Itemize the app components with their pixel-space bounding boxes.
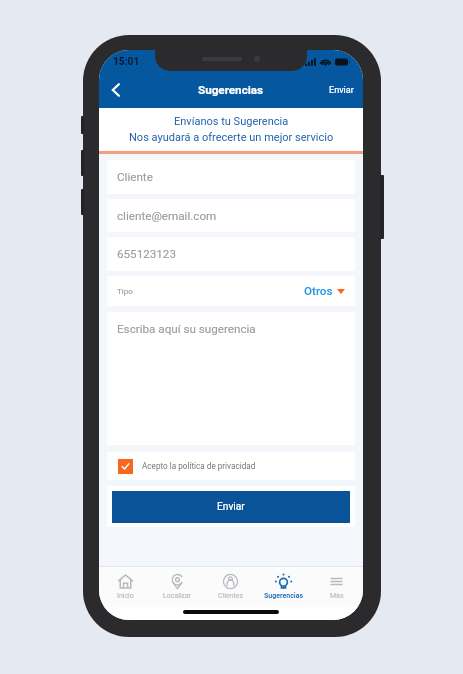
staticText: cliente@email.com [117,209,217,223]
button[interactable]: Más [310,567,363,607]
staticText: 15:01 [113,56,140,68]
staticText: Acepto la política de privacidad [142,461,256,471]
button[interactable]: Localizar [151,567,204,607]
staticText: Enviar [217,501,245,513]
button[interactable]: Escriba aquí su sugerencia [107,312,355,445]
staticText: Sugerencias [264,592,303,600]
button[interactable]: Tipo [107,276,355,306]
button[interactable]: Inicio [99,567,151,607]
button[interactable]: Acepto la política de privacidad [107,452,355,480]
staticText: Localizar [163,592,192,600]
button[interactable]: Enviar [112,491,350,523]
staticText: Envíanos tu Sugerencia [174,115,289,128]
staticText: Más [330,592,344,600]
staticText: Otros [304,284,333,298]
staticText: Tipo [117,287,133,296]
button[interactable]: Clientes [204,567,257,607]
staticText: Escriba aquí su sugerencia [117,322,256,336]
button[interactable]: 655123123 [107,237,355,271]
button[interactable]: cliente@email.com [107,199,355,232]
button[interactable]: Enviar [320,77,363,104]
staticText: Nos ayudará a ofrecerte un mejor servici… [129,131,334,144]
staticText: Clientes [218,592,244,600]
button[interactable]: Cliente [107,160,355,194]
staticText: 655123123 [117,247,176,261]
staticText: Enviar [329,85,354,96]
staticText: Sugerencias [198,83,264,97]
staticText: Inicio [117,592,134,600]
button[interactable]: Sugerencias [257,567,310,607]
staticText: Cliente [117,170,153,184]
button[interactable]: Atrás [102,76,130,104]
